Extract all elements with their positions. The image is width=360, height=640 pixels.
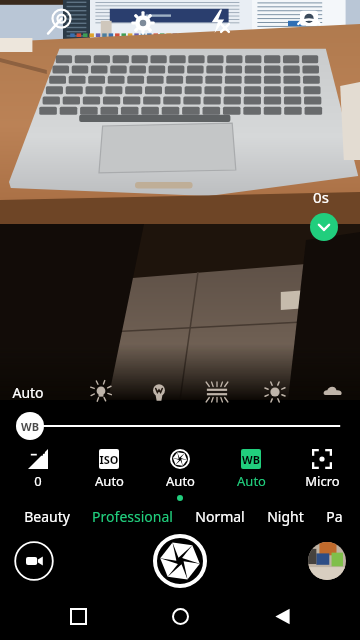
staticText: Auto	[166, 472, 195, 490]
staticText: Micro	[305, 472, 340, 490]
button[interactable]: Settings	[126, 6, 160, 40]
staticText: Normal	[195, 507, 245, 526]
staticText: 0s	[313, 187, 329, 207]
button[interactable]: Collapse controls	[310, 213, 338, 241]
button[interactable]: Home	[156, 592, 204, 640]
button[interactable]: White balance slider	[0, 409, 360, 443]
button[interactable]: Warm fluorescent	[142, 375, 176, 409]
button[interactable]: Flash off	[202, 4, 236, 38]
button[interactable]: Pa	[324, 507, 345, 526]
button[interactable]: Focus metering	[43, 4, 77, 38]
button[interactable]: WB	[218, 449, 284, 490]
staticText: Auto	[95, 472, 124, 490]
button[interactable]: Cloudy	[316, 375, 350, 409]
button[interactable]: Shutter	[151, 532, 209, 590]
button[interactable]: Recents	[54, 592, 102, 640]
staticText: 0	[34, 472, 42, 490]
button[interactable]: Professional	[90, 507, 175, 526]
staticText: WB	[21, 419, 39, 434]
button[interactable]: Normal	[193, 507, 247, 526]
staticText: ISO	[99, 452, 119, 467]
staticText: Auto	[12, 383, 44, 402]
button[interactable]: Back	[258, 592, 306, 640]
button[interactable]: 0	[5, 449, 71, 490]
button[interactable]: Switch camera	[290, 2, 328, 40]
button[interactable]: Auto	[147, 449, 213, 490]
staticText: Night	[267, 507, 304, 526]
staticText: Professional	[92, 507, 173, 526]
button[interactable]: Beauty	[22, 507, 72, 526]
staticText: WB	[242, 452, 260, 467]
staticText: Beauty	[24, 507, 70, 526]
staticText: Auto	[237, 472, 266, 490]
button[interactable]: Gallery	[308, 542, 346, 580]
button[interactable]: Micro	[289, 449, 355, 490]
button[interactable]: ISO	[76, 449, 142, 490]
button[interactable]: Incandescent	[84, 375, 118, 409]
button[interactable]: Daylight	[258, 375, 292, 409]
button[interactable]: Fluorescent	[200, 375, 234, 409]
staticText: Pa	[326, 507, 343, 526]
button[interactable]: Night	[265, 507, 306, 526]
button[interactable]: Switch to video	[12, 539, 56, 583]
